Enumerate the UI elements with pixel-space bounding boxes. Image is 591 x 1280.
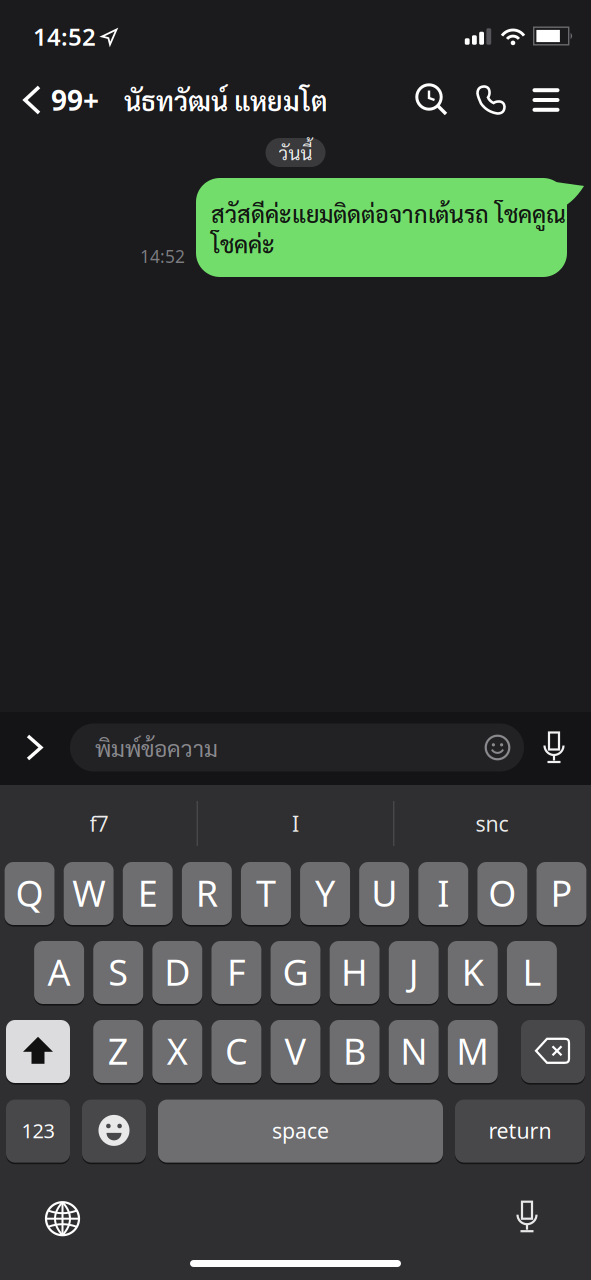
button[interactable]: Back <box>0 81 99 119</box>
staticText: Z <box>108 1026 129 1075</box>
staticText: D <box>164 947 190 996</box>
button[interactable]: A <box>34 941 84 1006</box>
staticText: 14:52 <box>140 244 185 268</box>
button[interactable]: D <box>152 941 202 1006</box>
staticText: I <box>437 868 449 917</box>
button[interactable]: O <box>477 862 527 927</box>
staticText: B <box>343 1026 366 1075</box>
button[interactable]: Next keyboard <box>0 1200 81 1237</box>
button[interactable]: Call <box>451 81 510 119</box>
button[interactable]: H <box>330 941 380 1006</box>
staticText: A <box>48 947 71 996</box>
staticText: J <box>409 947 419 996</box>
button[interactable]: Z <box>93 1020 143 1085</box>
staticText: K <box>462 947 484 996</box>
staticText: R <box>196 868 218 917</box>
button[interactable]: T <box>241 862 291 927</box>
staticText: H <box>341 947 368 996</box>
button[interactable]: f7 <box>2 809 197 838</box>
button[interactable]: Shift <box>6 1020 70 1085</box>
button[interactable]: L <box>507 941 557 1006</box>
button[interactable]: Menu <box>510 87 561 113</box>
button[interactable]: N <box>389 1020 439 1085</box>
staticText: I <box>292 809 299 838</box>
staticText: นัธทวัฒน์ แหยมโต <box>124 83 328 117</box>
staticText: 14:52 <box>33 20 96 53</box>
button[interactable]: M <box>448 1020 498 1085</box>
button[interactable]: V <box>270 1020 320 1085</box>
staticText: T <box>256 868 276 917</box>
button[interactable]: Expand <box>0 734 43 761</box>
staticText: L <box>522 947 541 996</box>
staticText: O <box>488 868 516 917</box>
button[interactable]: return <box>455 1100 585 1164</box>
staticText: G <box>282 947 308 996</box>
staticText: f7 <box>90 809 109 838</box>
button[interactable]: Emoji <box>82 1100 146 1164</box>
button[interactable]: B <box>330 1020 380 1085</box>
staticText: M <box>456 1026 489 1075</box>
button[interactable]: K <box>448 941 498 1006</box>
staticText: P <box>550 868 572 917</box>
staticText: U <box>371 868 397 917</box>
staticText: Q <box>16 868 44 917</box>
staticText: F <box>227 947 246 996</box>
staticText: C <box>225 1026 248 1075</box>
button[interactable]: Y <box>300 862 350 927</box>
button[interactable]: P <box>536 862 586 927</box>
button[interactable]: X <box>152 1020 202 1085</box>
button[interactable]: E <box>123 862 173 927</box>
button[interactable]: Dictation <box>515 1201 591 1237</box>
button[interactable]: U <box>359 862 409 927</box>
button[interactable]: space <box>158 1100 443 1164</box>
button[interactable]: Delete <box>521 1020 585 1085</box>
button[interactable]: Search <box>413 81 451 119</box>
staticText: X <box>167 1026 188 1075</box>
staticText: S <box>108 947 128 996</box>
staticText: สวัสดีค่ะแยมติดต่อจากเต้นรถ โชคคูณ <box>211 198 566 228</box>
staticText: N <box>400 1026 427 1075</box>
staticText: return <box>488 1116 551 1145</box>
button[interactable]: W <box>64 862 114 927</box>
button[interactable]: I <box>418 862 468 927</box>
staticText: snc <box>475 809 508 838</box>
button[interactable]: Message field <box>43 723 524 771</box>
staticText: E <box>138 868 158 917</box>
button[interactable]: R <box>182 862 232 927</box>
staticText: โชคค่ะ <box>211 228 275 259</box>
button[interactable]: F <box>211 941 261 1006</box>
button[interactable]: Voice message <box>524 731 591 763</box>
staticText: Y <box>315 868 335 917</box>
staticText: พิมพ์ข้อความ <box>95 733 218 762</box>
button[interactable]: G <box>270 941 320 1006</box>
staticText: V <box>284 1026 306 1075</box>
staticText: W <box>72 868 105 917</box>
staticText: 123 <box>21 1117 54 1144</box>
button[interactable]: J <box>389 941 439 1006</box>
button[interactable]: S <box>93 941 143 1006</box>
button[interactable]: 123 <box>6 1100 70 1164</box>
button[interactable]: snc <box>394 809 589 838</box>
staticText: 99+ <box>51 81 99 119</box>
button[interactable]: Q <box>5 862 55 927</box>
staticText: space <box>272 1116 329 1145</box>
button[interactable]: I <box>198 809 393 838</box>
staticText: วันนี้ <box>278 140 312 165</box>
button[interactable]: C <box>211 1020 261 1085</box>
